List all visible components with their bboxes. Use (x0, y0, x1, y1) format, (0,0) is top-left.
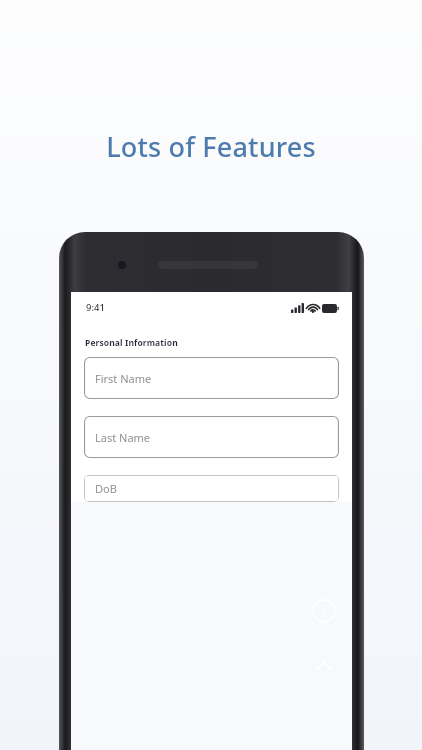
staticText: DoB (95, 481, 117, 496)
staticText: First Name (95, 371, 152, 386)
button[interactable]: First Name (84, 357, 339, 399)
staticText: Last Name (95, 430, 151, 445)
button[interactable]: DoB (84, 475, 339, 502)
staticText: 9:41 (86, 301, 105, 314)
staticText: Lots of Features (0, 128, 422, 165)
staticText: Personal Information (85, 337, 178, 349)
button[interactable]: Last Name (84, 416, 339, 458)
